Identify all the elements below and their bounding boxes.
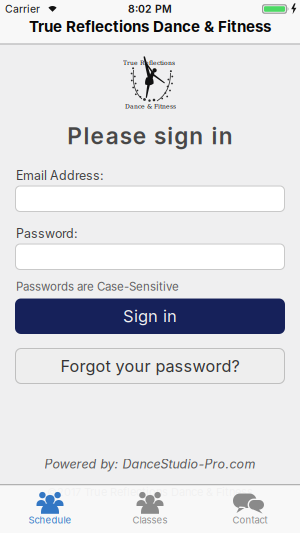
staticText: 8:02 PM	[128, 3, 172, 15]
staticText: Password:	[16, 226, 78, 241]
staticText: Powered by: DanceStudio-Pro.com	[44, 456, 255, 471]
staticText: Contact	[232, 514, 267, 526]
staticText: True Reflections Dance & Fitness	[29, 17, 271, 36]
staticText: Forgot your password?	[60, 356, 239, 376]
staticText: Sign in	[123, 306, 177, 326]
staticText: Please sign in	[67, 122, 233, 150]
staticText: Passwords are Case-Sensitive	[16, 279, 179, 293]
staticText: Carrier	[5, 3, 40, 15]
staticText: Schedule	[28, 514, 71, 526]
staticText: Dance & Fitness	[125, 103, 176, 110]
staticText: Email Address:	[16, 168, 104, 183]
staticText: True Reflections	[123, 59, 175, 66]
staticText: Classes	[132, 514, 167, 526]
staticText: ©2017 True Reflections Dance & Fitness	[47, 485, 253, 499]
